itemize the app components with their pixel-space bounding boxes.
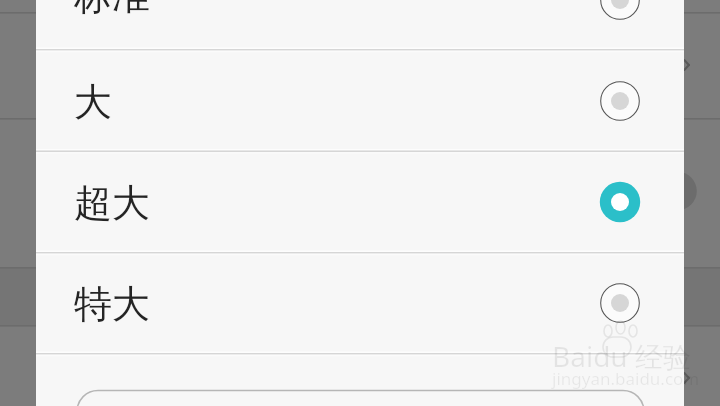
staticText: 超大 xyxy=(74,179,150,227)
other: 特大, not selected xyxy=(592,275,648,331)
staticText: jingyan.baidu.com xyxy=(552,367,700,390)
button[interactable]: 超大 xyxy=(36,151,684,252)
button[interactable]: 特大 xyxy=(36,252,684,353)
staticText: Baidu 经验 xyxy=(552,337,691,375)
other: 超大, selected xyxy=(592,174,648,230)
other: 大, not selected xyxy=(592,73,648,129)
other: 标准, not selected xyxy=(592,0,648,28)
button[interactable]: 大 xyxy=(36,50,684,151)
staticText: 特大 xyxy=(74,280,150,328)
staticText: 标准 xyxy=(74,0,150,20)
staticText: 大 xyxy=(74,78,112,126)
button[interactable]: 标准 xyxy=(36,0,684,50)
